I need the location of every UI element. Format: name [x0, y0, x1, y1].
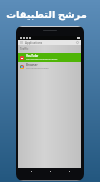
button[interactable]: Recents [65, 167, 73, 175]
button[interactable]: Back [27, 167, 35, 175]
staticText: مرشح التطبيقات [6, 8, 87, 21]
staticText: com.android.chrome [26, 67, 49, 70]
button[interactable]: Browser [18, 62, 81, 71]
button[interactable]: More options [76, 41, 79, 44]
button[interactable]: Home [46, 167, 54, 175]
staticText: YouTube [26, 54, 39, 58]
staticText: Traffic [20, 47, 29, 51]
staticText: Applications [25, 41, 43, 45]
button[interactable]: YouTube [18, 53, 81, 62]
staticText: Browser [26, 63, 38, 67]
staticText: com.google.android.youtube [26, 58, 58, 61]
